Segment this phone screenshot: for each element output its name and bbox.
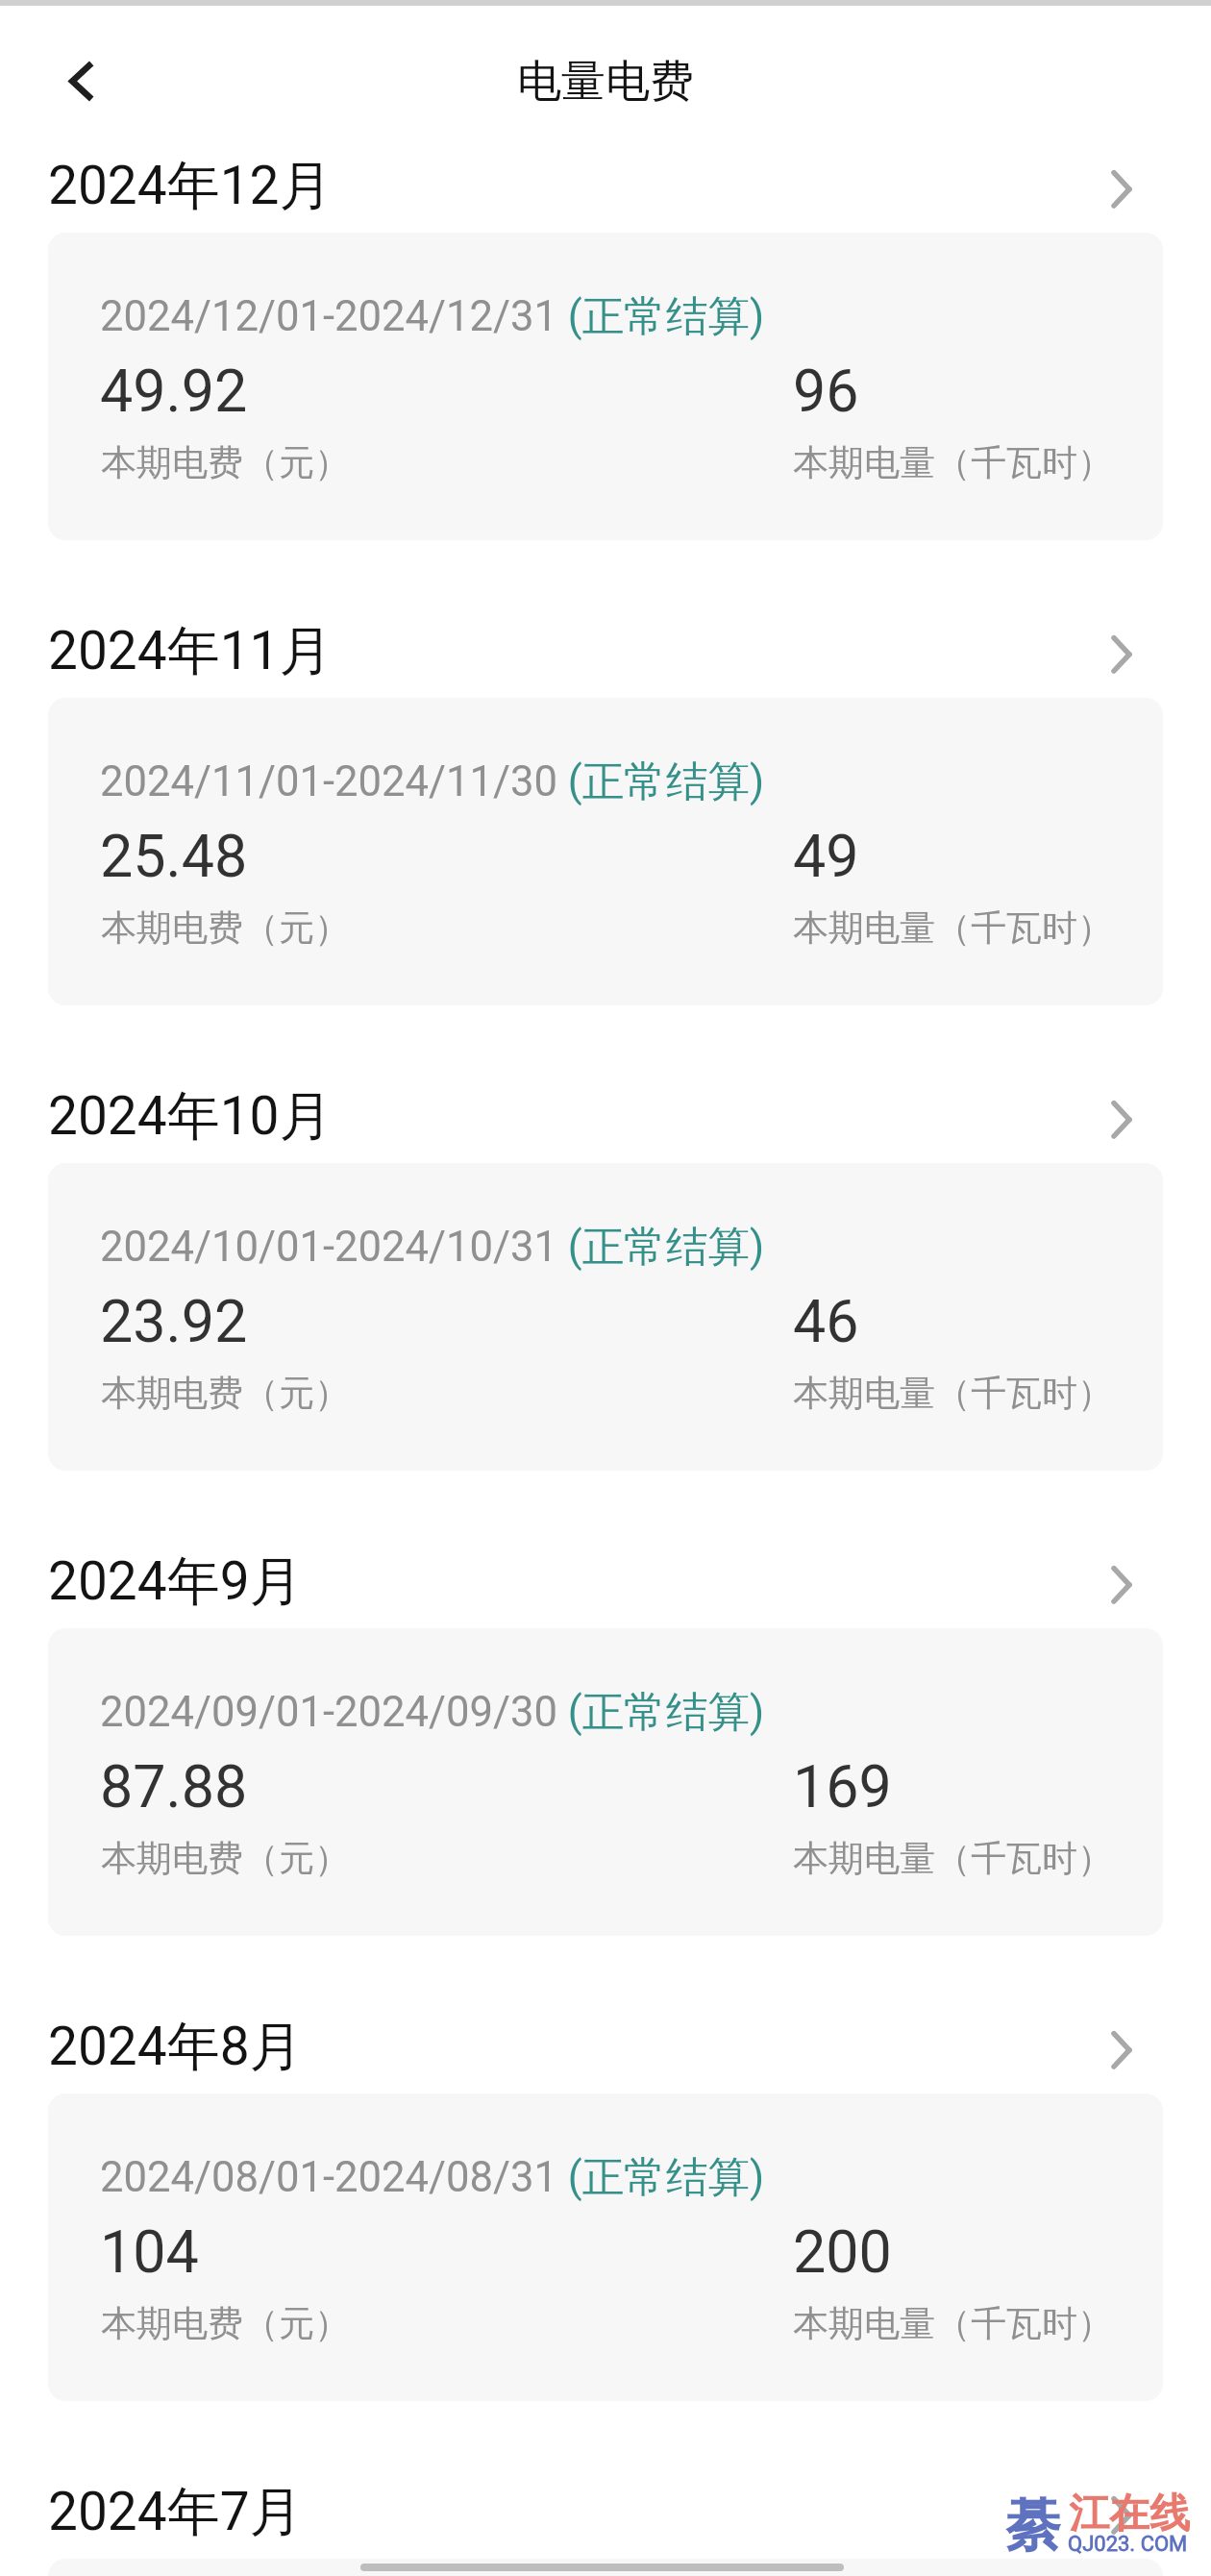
button[interactable]: 2024/07/01-2024/07/31 (正常结算)	[48, 2559, 1163, 2576]
button[interactable]: 2024年7月	[0, 2479, 1211, 2559]
staticText: 25.48	[100, 822, 248, 890]
staticText: 2024/12/01-2024/12/31 (正常结算)	[100, 290, 765, 343]
staticText: 23.92	[100, 1287, 248, 1355]
button[interactable]: 2024年11月	[0, 618, 1211, 698]
staticText: 本期电费（元）	[101, 1371, 350, 1416]
staticText: 本期电量（千瓦时）	[793, 1371, 1113, 1416]
staticText: 江在线	[1069, 2489, 1190, 2539]
button[interactable]: 2024/11/01-2024/11/30 (正常结算)	[48, 698, 1163, 1005]
staticText: 2024/10/01-2024/10/31 (正常结算)	[100, 1221, 765, 1274]
staticText: 49	[793, 822, 859, 890]
staticText: 綦	[1005, 2490, 1061, 2561]
staticText: 169	[793, 1752, 892, 1821]
staticText: 96	[793, 357, 859, 425]
button[interactable]: 2024/09/01-2024/09/30 (正常结算)	[48, 1628, 1163, 1936]
staticText: 2024年10月	[48, 1083, 333, 1150]
staticText: 本期电量（千瓦时）	[793, 440, 1113, 485]
staticText: 104	[100, 2217, 199, 2286]
staticText: 本期电量（千瓦时）	[793, 905, 1113, 951]
staticText: 本期电费（元）	[101, 905, 350, 951]
staticText: 2024年7月	[48, 2479, 303, 2545]
staticText: 2024/09/01-2024/09/30 (正常结算)	[100, 1686, 765, 1739]
staticText: 49.92	[100, 357, 248, 425]
button[interactable]: 2024/08/01-2024/08/31 (正常结算)	[48, 2093, 1163, 2401]
staticText: 200	[793, 2217, 892, 2286]
button[interactable]: 2024年10月	[0, 1083, 1211, 1163]
staticText: 2024年9月	[48, 1548, 303, 1615]
staticText: 46	[793, 1287, 859, 1355]
staticText: 87.88	[100, 1752, 248, 1821]
staticText: 电量电费	[517, 54, 694, 110]
staticText: QJ023. COM	[1068, 2532, 1188, 2557]
staticText: 本期电费（元）	[101, 2301, 350, 2346]
staticText: 2024年12月	[48, 153, 333, 219]
staticText: 2024/11/01-2024/11/30 (正常结算)	[100, 755, 765, 808]
button[interactable]: 2024年8月	[0, 2014, 1211, 2093]
staticText: 2024年11月	[48, 618, 333, 684]
staticText: 2024年8月	[48, 2014, 303, 2080]
button[interactable]: 2024/10/01-2024/10/31 (正常结算)	[48, 1163, 1163, 1471]
button[interactable]: 2024/12/01-2024/12/31 (正常结算)	[48, 233, 1163, 540]
staticText: 2024/08/01-2024/08/31 (正常结算)	[100, 2151, 765, 2204]
button[interactable]: 2024年12月	[0, 153, 1211, 233]
staticText: 本期电费（元）	[101, 440, 350, 485]
button[interactable]: 2024年9月	[0, 1548, 1211, 1628]
staticText: 本期电量（千瓦时）	[793, 2301, 1113, 2346]
staticText: 本期电费（元）	[101, 1836, 350, 1881]
button[interactable]: Back	[35, 38, 127, 125]
staticText: 本期电量（千瓦时）	[793, 1836, 1113, 1881]
